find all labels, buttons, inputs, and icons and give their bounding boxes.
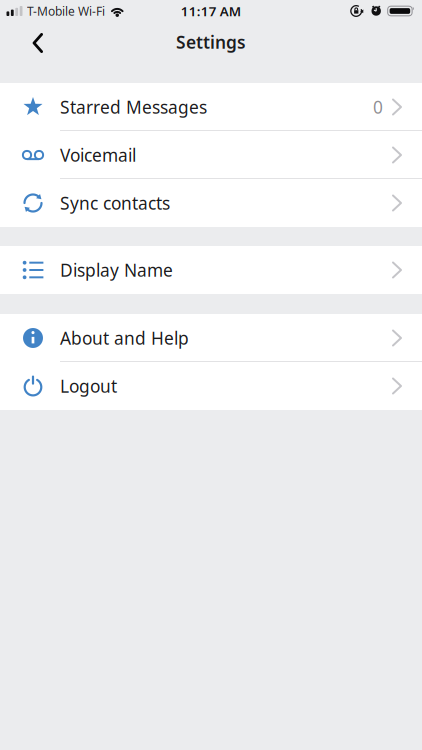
button[interactable]: Logout bbox=[0, 362, 422, 410]
staticText: Starred Messages bbox=[60, 95, 207, 118]
staticText: 11:17 AM bbox=[181, 2, 241, 20]
button[interactable]: Starred Messages bbox=[0, 83, 422, 131]
staticText: Display Name bbox=[60, 258, 173, 281]
button[interactable]: About and Help bbox=[0, 314, 422, 362]
staticText: T-Mobile Wi-Fi bbox=[27, 3, 105, 19]
button[interactable]: Back bbox=[0, 22, 43, 62]
button[interactable]: Display Name bbox=[0, 246, 422, 294]
button[interactable]: Voicemail bbox=[0, 131, 422, 179]
staticText: About and Help bbox=[60, 326, 189, 349]
staticText: 0 bbox=[373, 95, 383, 118]
button[interactable]: Sync contacts bbox=[0, 179, 422, 227]
staticText: Logout bbox=[60, 374, 117, 397]
staticText: Settings bbox=[176, 30, 246, 53]
staticText: Voicemail bbox=[60, 143, 136, 166]
staticText: Sync contacts bbox=[60, 191, 170, 214]
